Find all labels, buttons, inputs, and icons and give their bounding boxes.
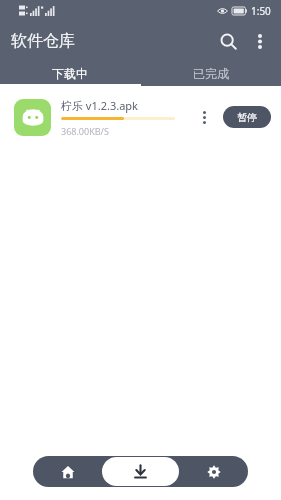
staticText: 下载中 (52, 66, 88, 81)
button[interactable]: 暂停 (223, 106, 271, 128)
staticText: 368.00KB/S (61, 125, 109, 137)
button[interactable]: 已完成 (140, 60, 281, 86)
button[interactable]: 柠乐 v1.2.3.apk (0, 86, 281, 148)
staticText: 1:50 (251, 4, 271, 18)
button[interactable]: Downloads (102, 457, 179, 486)
button[interactable]: Home (33, 456, 102, 487)
button[interactable]: Item options (193, 106, 215, 128)
staticText: 软件仓库 (11, 31, 75, 51)
staticText: 柠乐 v1.2.3.apk (61, 98, 138, 113)
button[interactable]: More options (245, 26, 275, 56)
button[interactable]: 下载中 (0, 60, 140, 86)
button[interactable]: Search (211, 24, 245, 58)
staticText: 暂停 (237, 111, 257, 124)
staticText: 已完成 (193, 66, 229, 81)
button[interactable]: Settings (179, 456, 248, 487)
